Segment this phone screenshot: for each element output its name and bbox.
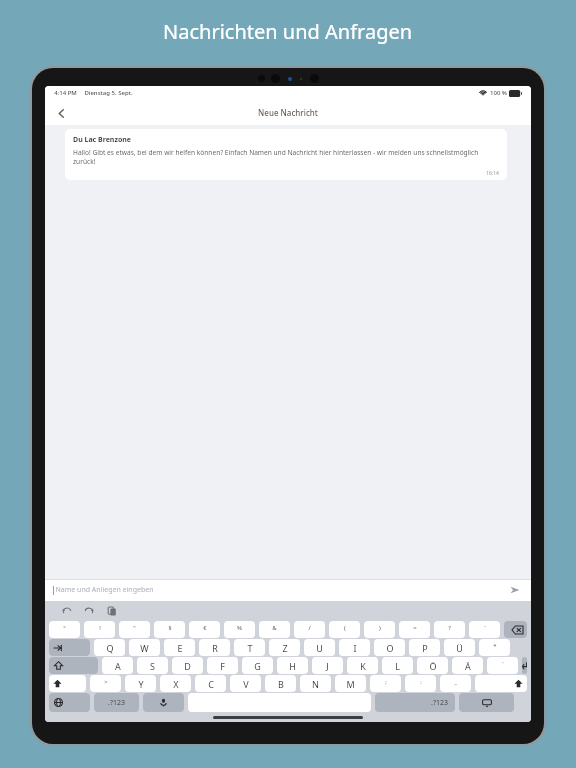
button[interactable]: " [119, 621, 150, 638]
button[interactable]: B [265, 675, 296, 692]
button[interactable]: Y [125, 675, 156, 692]
button[interactable]: J [312, 657, 343, 674]
button[interactable]: W [129, 639, 160, 656]
button[interactable]: ? [434, 621, 465, 638]
button[interactable]: ` [469, 621, 500, 638]
staticText: P [422, 642, 428, 654]
button[interactable]: .?123 [94, 693, 139, 712]
button[interactable]: S [137, 657, 168, 674]
staticText: T [247, 642, 253, 654]
button[interactable]: Senden [507, 582, 523, 598]
button[interactable]: Ä [452, 657, 483, 674]
button[interactable]: H [277, 657, 308, 674]
staticText: J [326, 660, 329, 672]
button[interactable]: I [339, 639, 370, 656]
button[interactable]: : [405, 675, 436, 692]
button[interactable]: ° [49, 621, 80, 638]
button[interactable]: Umschalt [475, 675, 527, 692]
button[interactable]: K [347, 657, 378, 674]
button[interactable] [522, 657, 527, 674]
button[interactable]: E [164, 639, 195, 656]
button[interactable]: Rückgängig [59, 603, 75, 619]
button[interactable]: * [479, 639, 510, 656]
button[interactable]: Sprache wechseln [49, 693, 90, 712]
staticText: * [493, 642, 497, 650]
button[interactable]: € [189, 621, 220, 638]
staticText: .?123 [108, 698, 125, 708]
button[interactable]: Diktieren [143, 693, 184, 712]
button[interactable]: = [399, 621, 430, 638]
button[interactable]: Einfügen [104, 603, 120, 619]
button[interactable]: .?123 [375, 693, 455, 712]
staticText: B [278, 678, 284, 690]
staticText: ` [484, 624, 486, 632]
button[interactable]: Q [94, 639, 125, 656]
staticText: R [212, 642, 218, 654]
button[interactable]: Z [269, 639, 300, 656]
button[interactable]: O [374, 639, 405, 656]
staticText: " [133, 624, 136, 632]
button[interactable]: R [199, 639, 230, 656]
button[interactable]: F [207, 657, 238, 674]
button[interactable]: Ü [444, 639, 475, 656]
button[interactable]: Du Lac Brenzone [65, 129, 507, 180]
button[interactable]: T [234, 639, 265, 656]
button[interactable]: % [224, 621, 255, 638]
button[interactable]: N [300, 675, 331, 692]
staticText: € [203, 624, 207, 632]
staticText: ' [502, 660, 504, 668]
button[interactable]: G [242, 657, 273, 674]
button[interactable]: Name und Anliegen eingeben [53, 579, 507, 601]
button[interactable]: & [259, 621, 290, 638]
button[interactable]: M [335, 675, 366, 692]
button[interactable]: C [195, 675, 226, 692]
button[interactable]: Umschalt [49, 675, 86, 692]
staticText: .?123 [431, 698, 448, 708]
button[interactable]: Umschalt [49, 657, 98, 674]
staticText: Ö [429, 660, 437, 672]
staticText: ! [99, 624, 101, 632]
button[interactable]: U [304, 639, 335, 656]
staticText: L [395, 660, 400, 672]
staticText: Ü [456, 642, 463, 654]
button[interactable]: V [230, 675, 261, 692]
staticText: 4:14 PM [54, 89, 77, 97]
button[interactable]: D [172, 657, 203, 674]
button[interactable] [49, 639, 90, 656]
button[interactable]: L [382, 657, 413, 674]
button[interactable]: ' [487, 657, 518, 674]
button[interactable]: P [409, 639, 440, 656]
button[interactable]: ) [364, 621, 395, 638]
staticText: 16:14 [486, 170, 499, 177]
button[interactable]: A [102, 657, 133, 674]
staticText: ) [379, 624, 381, 632]
staticText: H [289, 660, 296, 672]
staticText: X [173, 678, 179, 690]
staticText: & [272, 624, 277, 632]
button[interactable]: Wiederholen [81, 603, 97, 619]
staticText: S [150, 660, 155, 672]
staticText: § [168, 624, 172, 632]
button[interactable]: Zurück [50, 102, 72, 124]
button[interactable]: Ö [417, 657, 448, 674]
staticText: : [420, 678, 422, 686]
button[interactable]: _ [440, 675, 471, 692]
staticText: Ä [465, 660, 471, 672]
other: Umschalt [54, 661, 63, 670]
button[interactable]: > [90, 675, 121, 692]
button[interactable]: Löschen [504, 621, 527, 638]
staticText: Y [138, 678, 144, 690]
button[interactable]: ( [329, 621, 360, 638]
other: Umschalt [514, 679, 523, 688]
button[interactable]: X [160, 675, 191, 692]
button[interactable]: § [154, 621, 185, 638]
button[interactable]: / [294, 621, 325, 638]
button[interactable]: Tastatur ausblenden [459, 693, 514, 712]
staticText: ? [448, 624, 451, 632]
button[interactable]: ; [370, 675, 401, 692]
button[interactable]: ! [84, 621, 115, 638]
staticText: V [243, 678, 249, 690]
staticText: E [177, 642, 183, 654]
